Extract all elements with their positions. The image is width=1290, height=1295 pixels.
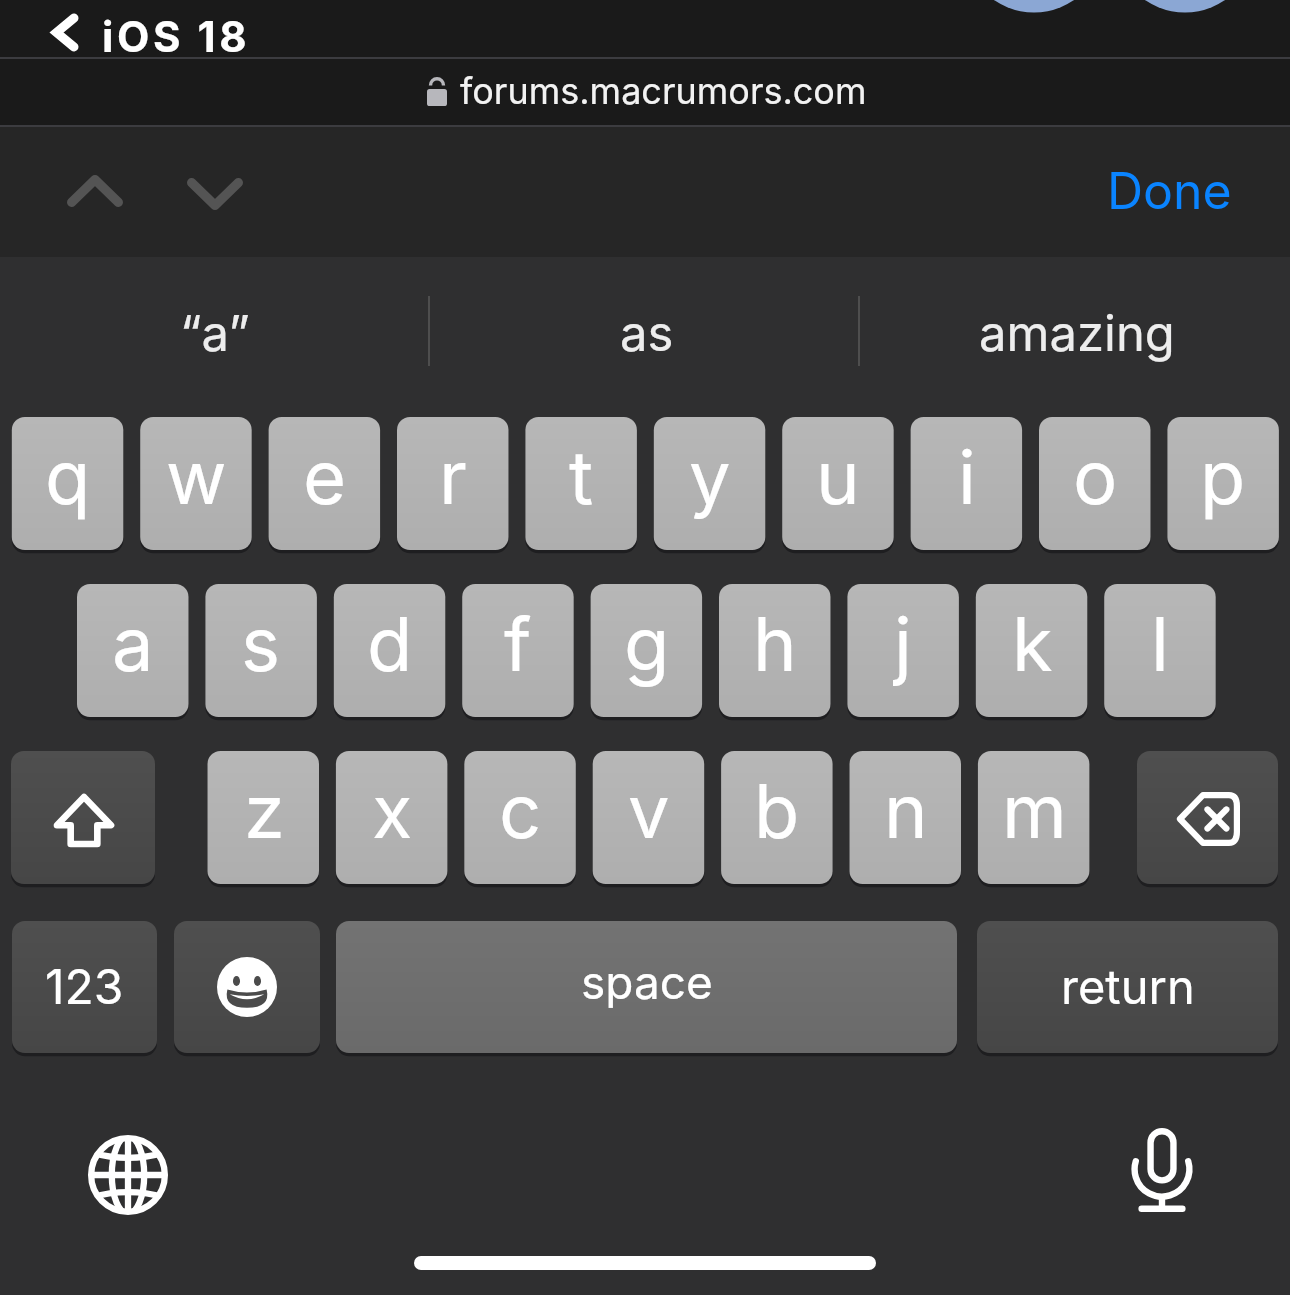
button[interactable]: as (447, 289, 847, 377)
button[interactable]: i (911, 417, 1023, 550)
button[interactable]: m (978, 751, 1090, 884)
staticText: w (166, 432, 227, 522)
staticText: g (624, 599, 670, 689)
button[interactable]: o (1039, 417, 1151, 550)
button[interactable]: Dictation (1133, 1127, 1191, 1213)
staticText: q (45, 432, 91, 522)
staticText: a (112, 599, 154, 689)
button[interactable]: w (140, 417, 252, 550)
staticText: k (1012, 599, 1053, 689)
button[interactable]: Next field (175, 164, 255, 224)
button[interactable]: amazing (877, 289, 1277, 377)
staticText: d (367, 599, 413, 689)
staticText: z (244, 766, 285, 856)
button[interactable]: z (208, 751, 320, 884)
button[interactable]: j (847, 584, 959, 717)
staticText: x (372, 766, 413, 856)
button[interactable]: h (719, 584, 831, 717)
staticText: m (1002, 766, 1067, 856)
staticText: i (958, 432, 976, 522)
staticText: v (628, 766, 670, 856)
button[interactable]: iOS 18 (0, 0, 1290, 57)
button[interactable]: 123 (12, 921, 157, 1053)
staticText: iOS 18 (102, 11, 251, 62)
button[interactable]: u (782, 417, 894, 550)
staticText: u (816, 432, 860, 522)
staticText: 123 (45, 957, 124, 1015)
button[interactable]: space (336, 921, 957, 1053)
button[interactable]: forums.macrumors.com (423, 70, 867, 114)
staticText: forums.macrumors.com (460, 69, 867, 113)
staticText: r (439, 432, 467, 522)
staticText: l (1151, 599, 1169, 689)
button[interactable]: e (269, 417, 381, 550)
button[interactable]: k (976, 584, 1088, 717)
button[interactable]: c (464, 751, 576, 884)
staticText: space (581, 954, 713, 1010)
staticText: n (884, 766, 928, 856)
button[interactable]: x (336, 751, 448, 884)
button[interactable]: Emoji (174, 921, 320, 1053)
staticText: h (753, 599, 797, 689)
button[interactable]: p (1167, 417, 1279, 550)
staticText: b (754, 766, 800, 856)
button[interactable]: g (591, 584, 703, 717)
staticText: as (620, 304, 674, 363)
button[interactable]: d (334, 584, 446, 717)
staticText: j (894, 599, 912, 689)
staticText: f (504, 599, 532, 689)
button[interactable]: “a” (15, 289, 415, 377)
button[interactable]: f (462, 584, 574, 717)
staticText: p (1200, 432, 1246, 522)
button[interactable]: s (205, 584, 317, 717)
button[interactable]: r (397, 417, 509, 550)
staticText: o (1073, 432, 1118, 522)
button[interactable]: n (850, 751, 962, 884)
button[interactable]: v (593, 751, 705, 884)
button[interactable]: Previous field (55, 161, 135, 221)
staticText: y (689, 432, 731, 522)
button[interactable]: Change keyboard (88, 1134, 168, 1216)
staticText: return (1061, 958, 1195, 1015)
button[interactable]: Shift (11, 751, 155, 884)
staticText: e (303, 432, 347, 522)
button[interactable]: b (721, 751, 833, 884)
button[interactable]: return (977, 921, 1278, 1053)
staticText: t (569, 432, 594, 522)
staticText: c (499, 766, 542, 856)
button[interactable]: t (525, 417, 637, 550)
button[interactable]: Done (1085, 154, 1253, 228)
button[interactable]: y (654, 417, 766, 550)
button[interactable]: a (77, 584, 189, 717)
staticText: amazing (979, 304, 1175, 363)
staticText: s (241, 599, 281, 689)
button[interactable]: q (12, 417, 124, 550)
button[interactable]: Backspace (1137, 751, 1278, 884)
button[interactable]: l (1104, 584, 1216, 717)
staticText: “a” (180, 304, 250, 363)
staticText: Done (1107, 161, 1232, 221)
